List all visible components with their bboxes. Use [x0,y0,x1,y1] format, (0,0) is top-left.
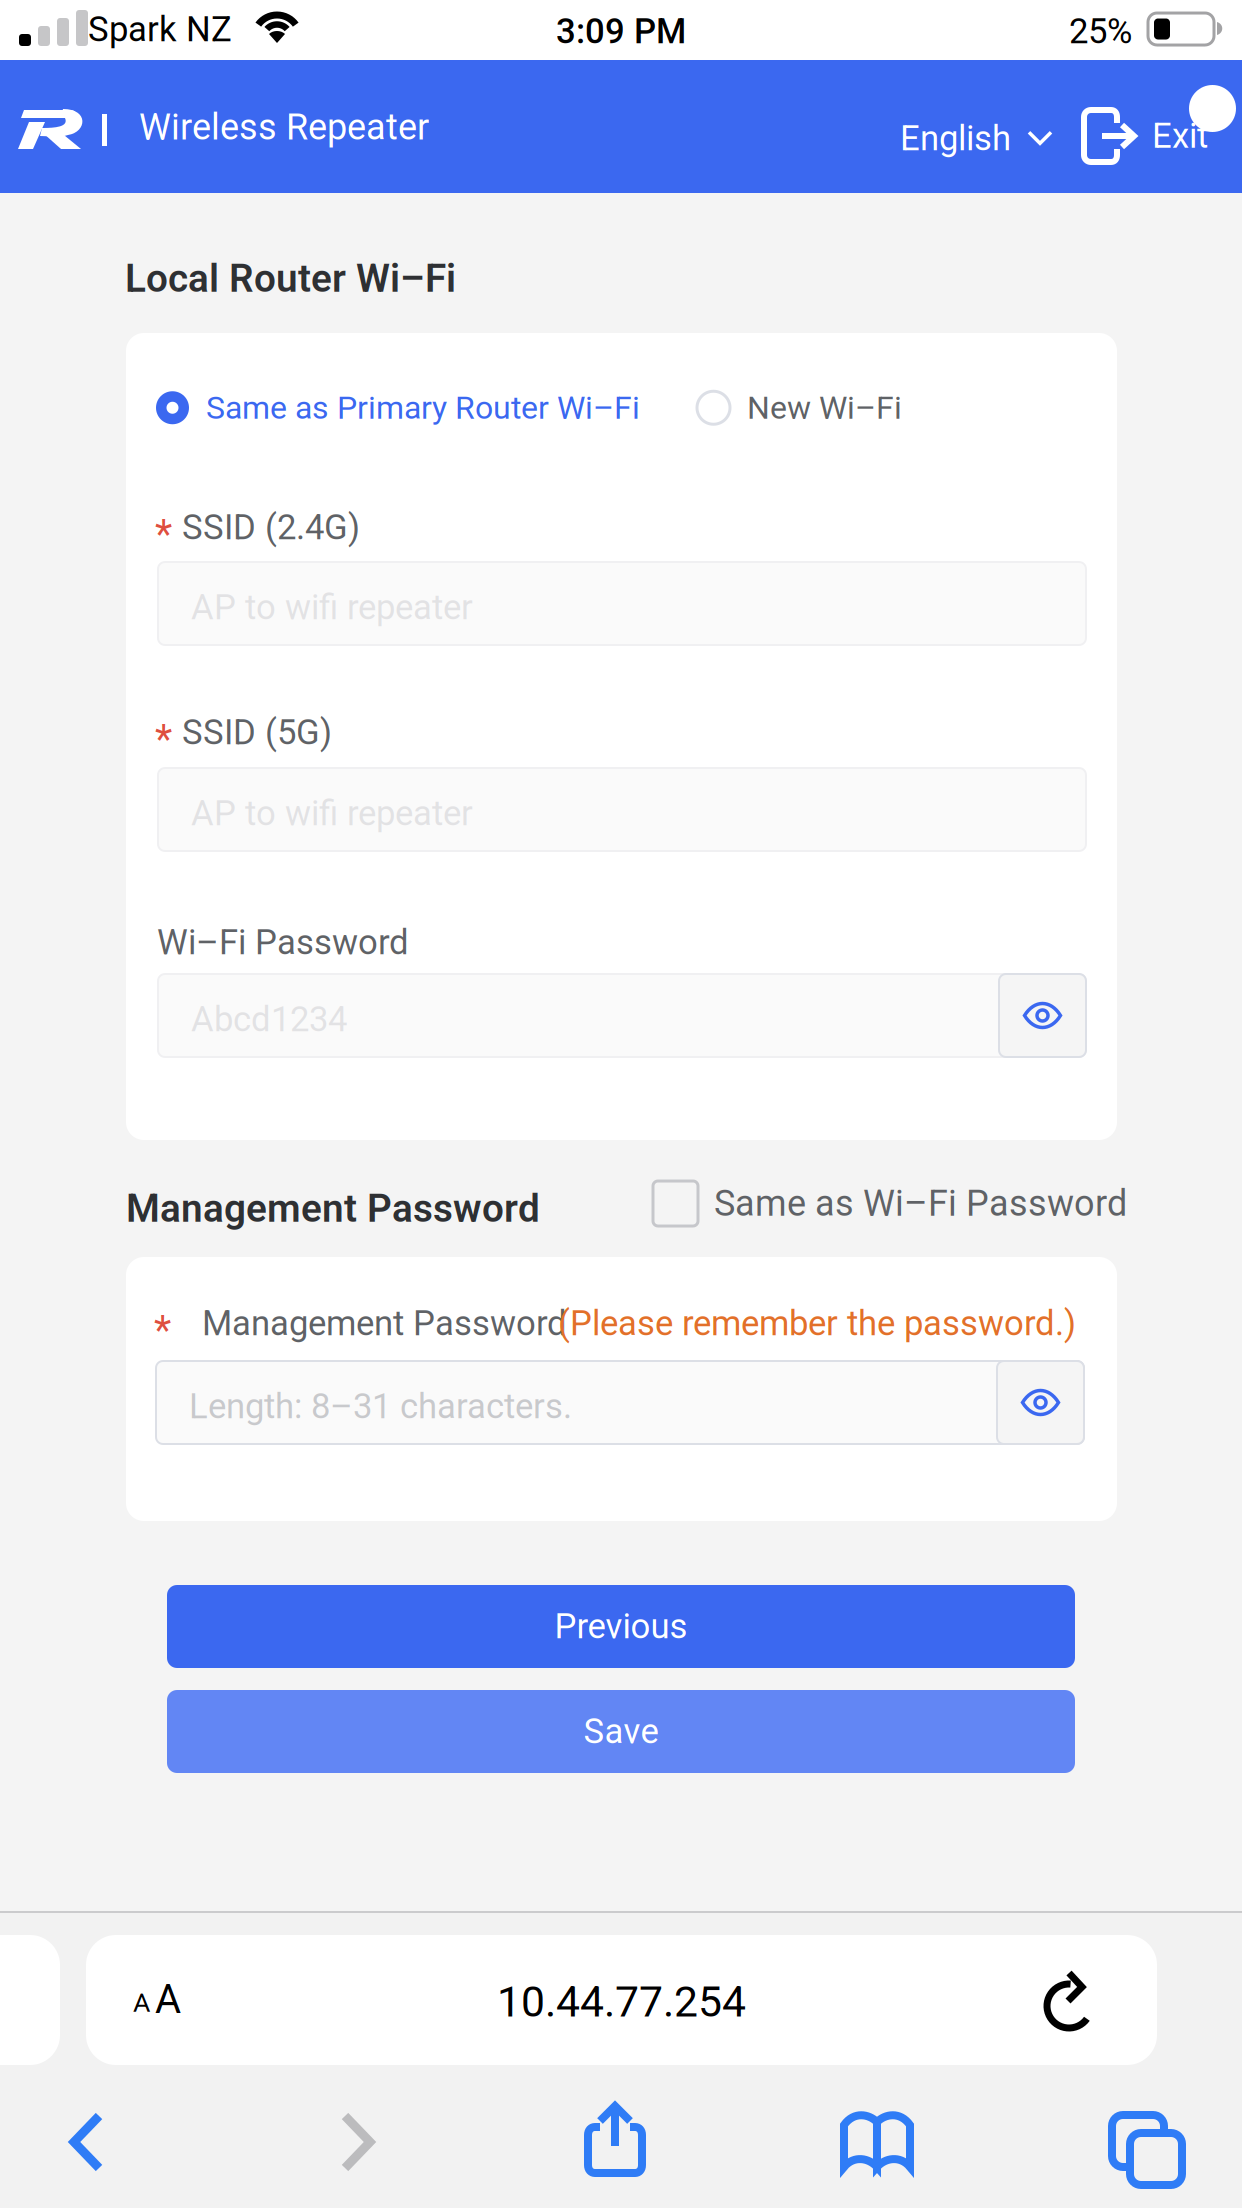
button[interactable]: Bookmarks [840,2111,914,2173]
button[interactable]: New Wi–Fi [697,379,902,436]
staticText: Same as Primary Router Wi–Fi [206,389,640,426]
button[interactable]: A [86,1935,1157,2065]
staticText: SSID (5G) [182,712,332,753]
button[interactable]: Exit [1078,98,1208,174]
staticText: * [155,716,172,763]
button[interactable]: Save [167,1690,1075,1773]
staticText: (Please remember the password.) [558,1303,1076,1344]
staticText: New Wi–Fi [747,389,902,426]
staticText: Local Router Wi–Fi [125,256,456,301]
staticText: Management Password [126,1186,540,1231]
staticText: * [154,1307,171,1354]
staticText: Management Password [202,1303,567,1344]
staticText: AP to wifi repeater [191,793,473,834]
button[interactable]: Same as Primary Router Wi–Fi [156,379,640,436]
staticText: Exit [1152,116,1208,156]
staticText: Save [583,1711,658,1752]
button[interactable]: Share [584,2101,646,2179]
button[interactable]: Same as Wi–Fi Password [653,1173,1127,1234]
button[interactable]: Forward [339,2112,375,2172]
staticText: * [155,511,172,558]
staticText: AP to wifi repeater [191,587,473,628]
staticText: Same as Wi–Fi Password [714,1182,1127,1225]
button[interactable]: Back [69,2112,105,2172]
button[interactable]: Tabs [1103,2106,1173,2176]
staticText: A [133,1987,150,2018]
staticText: 3:09 PM [556,11,686,52]
button[interactable]: English [890,100,1063,177]
staticText: 25% [1069,11,1132,52]
staticText: Previous [554,1606,687,1647]
staticText: Abcd1234 [191,999,347,1040]
button[interactable]: Show password [999,974,1086,1057]
staticText: English [900,118,1011,159]
staticText: SSID (2.4G) [182,507,360,548]
staticText: Wireless Repeater [139,106,429,148]
staticText: Length: 8–31 characters. [189,1386,572,1427]
staticText: Wi–Fi Password [157,922,409,963]
staticText: Spark NZ [88,9,232,50]
staticText: A [155,1976,181,2023]
button[interactable]: Show password [997,1361,1084,1444]
button[interactable]: Previous [167,1585,1075,1668]
staticText: 10.44.77.254 [497,1977,746,2027]
